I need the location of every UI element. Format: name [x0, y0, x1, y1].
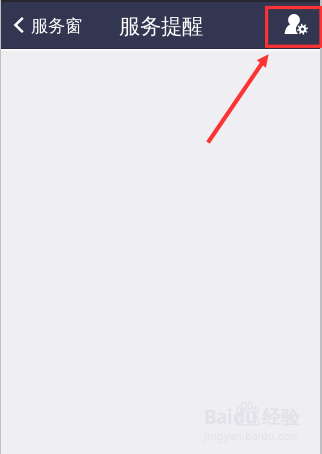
- staticText: jingyan.baidu.com: [204, 429, 299, 443]
- staticText: 服务提醒: [119, 13, 203, 40]
- button[interactable]: Settings: [274, 2, 322, 48]
- staticText: 服务窗: [31, 15, 82, 37]
- button[interactable]: 服务窗: [0, 2, 90, 48]
- staticText: Baidu 经验: [204, 404, 300, 429]
